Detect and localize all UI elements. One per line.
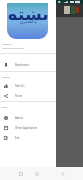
button[interactable]: Exit xyxy=(0,133,56,142)
staticText: About xyxy=(15,116,23,120)
button[interactable]: Rate Us xyxy=(0,81,56,90)
staticText: Rate Us xyxy=(15,84,25,88)
button[interactable]: About xyxy=(0,113,56,122)
staticText: Contact us xyxy=(2,43,12,46)
staticText: Other Application xyxy=(15,126,38,130)
button[interactable]: Back xyxy=(58,169,68,179)
button[interactable]: Bookmarks xyxy=(0,60,56,69)
staticText: پښتو xyxy=(7,4,48,20)
staticText: Other xyxy=(2,106,8,109)
button[interactable]: Share xyxy=(0,91,56,100)
staticText: Bookmarks xyxy=(15,63,30,67)
staticText: Share xyxy=(15,94,23,98)
staticText: Network xyxy=(2,76,11,79)
button[interactable]: Other Application xyxy=(0,123,56,132)
staticText: hilalpashtodict@gmail.com xyxy=(2,47,25,49)
staticText: Exit xyxy=(15,136,20,140)
staticText: ډکشنري xyxy=(19,18,37,24)
button[interactable]: Recents xyxy=(16,169,26,179)
button[interactable]: Home xyxy=(32,169,42,179)
